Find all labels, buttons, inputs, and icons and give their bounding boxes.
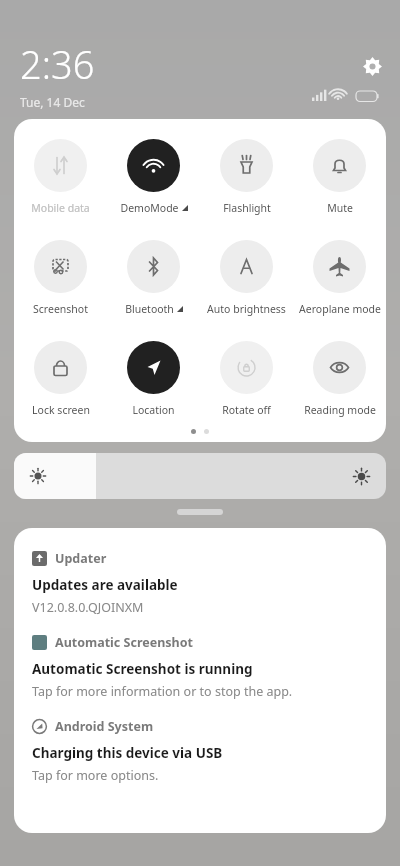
- button[interactable]: Brightness: [14, 453, 386, 499]
- staticText: Charging this device via USB: [32, 744, 223, 762]
- staticText: Location: [132, 403, 175, 417]
- staticText: Aeroplane mode: [299, 302, 381, 316]
- staticText: Tue, 14 Dec: [20, 94, 85, 110]
- staticText: Tap for more options.: [32, 767, 159, 784]
- staticText: Mute: [327, 201, 353, 215]
- button[interactable]: Location: [107, 339, 200, 419]
- button[interactable]: Bluetooth: [107, 238, 200, 318]
- button[interactable]: Reading mode: [293, 339, 386, 419]
- staticText: Screenshot: [33, 302, 88, 316]
- button[interactable]: Mobile data: [14, 137, 107, 217]
- staticText: Updater: [55, 550, 107, 567]
- button[interactable]: Rotate off: [200, 339, 293, 419]
- staticText: Android System: [55, 718, 154, 735]
- button[interactable]: Flashlight: [200, 137, 293, 217]
- staticText: Tap for more information or to stop the …: [32, 683, 293, 700]
- staticText: 2:36: [20, 38, 95, 90]
- staticText: DemoMode: [120, 201, 179, 215]
- staticText: Updates are available: [32, 576, 178, 594]
- button[interactable]: Aeroplane mode: [293, 238, 386, 318]
- button[interactable]: Auto brightness: [200, 238, 293, 318]
- button[interactable]: Updater: [14, 528, 386, 616]
- staticText: Auto brightness: [207, 302, 286, 316]
- button[interactable]: Settings: [356, 50, 388, 82]
- button[interactable]: Android System: [14, 700, 386, 784]
- button[interactable]: Mute: [293, 137, 386, 217]
- button[interactable]: Lock screen: [14, 339, 107, 419]
- button[interactable]: Screenshot: [14, 238, 107, 318]
- staticText: Reading mode: [304, 403, 376, 417]
- staticText: Bluetooth: [125, 302, 174, 316]
- staticText: Automatic Screenshot is running: [32, 660, 253, 678]
- staticText: Lock screen: [32, 403, 90, 417]
- staticText: Flashlight: [223, 201, 271, 215]
- button[interactable]: DemoMode: [107, 137, 200, 217]
- staticText: V12.0.8.0.QJOINXM: [32, 599, 144, 616]
- button[interactable]: Automatic Screenshot: [14, 616, 386, 700]
- staticText: Mobile data: [31, 201, 90, 215]
- staticText: Rotate off: [222, 403, 271, 417]
- staticText: Automatic Screenshot: [55, 634, 193, 651]
